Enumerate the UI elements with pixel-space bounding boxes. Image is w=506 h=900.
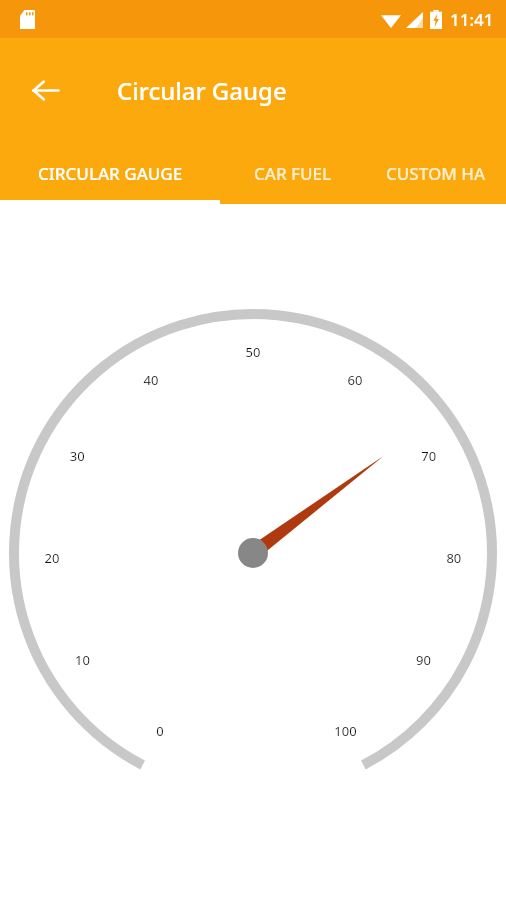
- button[interactable]: CAR FUEL: [220, 142, 365, 204]
- button[interactable]: CIRCULAR GAUGE: [0, 142, 220, 204]
- staticText: 11:41: [450, 8, 494, 31]
- button[interactable]: Back: [18, 63, 72, 117]
- staticText: CUSTOM HA: [386, 162, 486, 185]
- staticText: CIRCULAR GAUGE: [38, 162, 183, 185]
- staticText: Circular Gauge: [117, 74, 287, 107]
- button[interactable]: CUSTOM HA: [365, 142, 506, 204]
- staticText: CAR FUEL: [254, 162, 332, 185]
